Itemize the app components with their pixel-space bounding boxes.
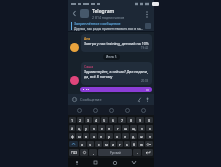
staticText: у [85,126,87,131]
button[interactable]: ф [69,133,75,139]
button[interactable]: Attach [136,96,143,103]
button[interactable]: Back [124,158,143,167]
button[interactable]: ж [138,133,145,139]
button[interactable]: х [146,125,153,131]
button[interactable]: GIFs [106,105,116,115]
staticText: Июль 5 [106,55,117,59]
button[interactable]: в [83,133,89,139]
staticText: а [93,134,95,139]
button[interactable]: ш [122,125,129,131]
button[interactable]: р [106,133,113,139]
button[interactable]: Маша [80,87,152,92]
button[interactable]: м [103,141,109,147]
button[interactable]: Shift [69,141,78,147]
button[interactable]: . [133,149,141,156]
button[interactable]: Stickers [90,105,100,115]
staticText: ч [89,142,92,147]
button[interactable]: ч [87,141,94,147]
button[interactable]: Саша [70,62,152,85]
button[interactable]: Home [105,158,124,167]
staticText: л [124,134,127,139]
staticText: 20:03 [141,79,149,83]
button[interactable]: Аня [70,34,152,52]
staticText: 9 [139,118,142,123]
button[interactable]: н [106,125,113,131]
staticText: я [81,142,84,147]
staticText: ?123 [71,151,78,155]
staticText: к [93,126,95,131]
staticText: ь [126,142,128,147]
button[interactable]: 2 [77,117,84,123]
button[interactable]: More options [143,10,151,18]
button[interactable]: Masks [122,105,132,115]
staticText: т [119,142,121,147]
button[interactable]: Space [98,149,132,156]
button[interactable]: Voice input [68,158,86,167]
button[interactable]: е [98,125,105,131]
button[interactable]: ь [124,141,130,147]
button[interactable]: 8 [127,117,135,123]
button[interactable]: л [122,133,129,139]
button[interactable]: Emoji [74,105,84,115]
button[interactable]: Backspace [145,141,153,147]
button[interactable]: , [89,149,97,156]
button[interactable]: з [138,125,145,131]
staticText: с [98,142,100,147]
staticText: ш [124,126,128,131]
button[interactable]: и [110,141,116,147]
button[interactable]: я [79,141,86,147]
button[interactable]: 0 [145,117,153,123]
button[interactable]: т [117,141,123,147]
button[interactable]: 9 [136,117,144,123]
button[interactable]: э [146,133,153,139]
staticText: р [108,134,111,139]
button[interactable]: о [114,133,121,139]
button[interactable]: Emoji keyboard [80,149,88,156]
button[interactable]: Voice message [144,96,151,103]
button[interactable]: ю [138,141,144,147]
button[interactable]: Enter [142,149,153,156]
button[interactable]: с [95,141,102,147]
staticText: 3 [87,118,90,123]
button[interactable]: Back [71,10,78,17]
staticText: з [141,126,143,131]
button[interactable]: Numbers [69,149,79,156]
staticText: Маша [86,89,96,90]
button[interactable]: д [130,133,137,139]
button[interactable]: ы [76,133,82,139]
staticText: Русский [110,151,121,155]
button[interactable]: 4 [93,117,100,123]
staticText: 2 814 подписчиков [92,15,125,20]
staticText: Здравствуйте, а сейчас? Две недели, да, … [84,69,148,79]
button[interactable]: у [83,125,89,131]
button[interactable]: 5 [101,117,108,123]
button[interactable]: к [90,125,97,131]
staticText: 0 [148,118,151,123]
button[interactable]: г [114,125,121,131]
button[interactable]: Сообщение [80,97,136,102]
button[interactable]: 1 [69,117,76,123]
staticText: Сообщение [80,97,102,102]
button[interactable]: Закреплённое сообщение [71,20,151,31]
staticText: Telegram [92,8,115,15]
button[interactable]: Back [71,7,151,20]
staticText: э [149,134,151,139]
button[interactable]: 7 [118,117,126,123]
staticText: ц [78,126,81,131]
staticText: ж [140,134,143,139]
button[interactable]: 3 [85,117,92,123]
staticText: 4 [95,118,98,123]
button[interactable]: Settings [138,105,148,115]
staticText: 7 [121,118,124,123]
button[interactable]: ц [76,125,82,131]
staticText: г [117,126,119,131]
button[interactable]: а [90,133,97,139]
button[interactable]: й [69,125,75,131]
button[interactable]: Emoji [71,96,78,103]
button[interactable]: 6 [109,117,117,123]
button[interactable]: Recents [86,158,105,167]
button[interactable]: щ [130,125,137,131]
button[interactable]: п [98,133,105,139]
button[interactable]: б [131,141,137,147]
staticText: 1 [71,118,74,123]
